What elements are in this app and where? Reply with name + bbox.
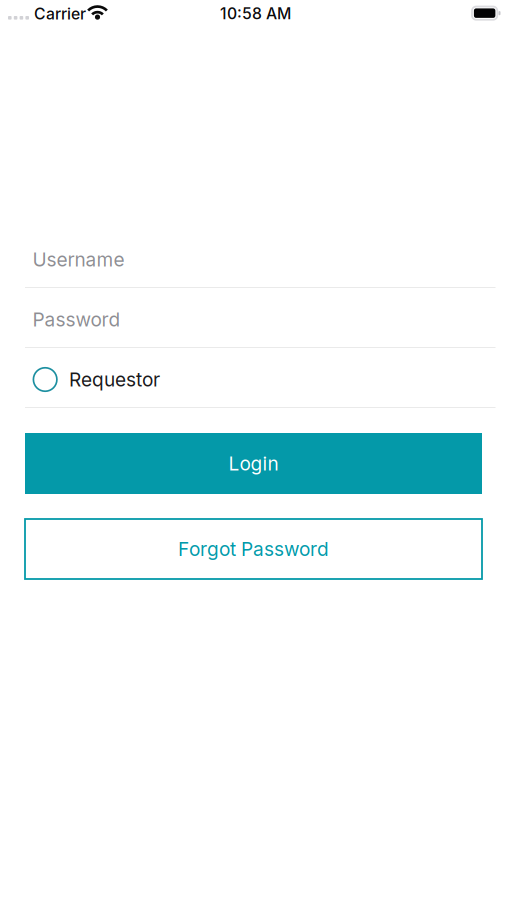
staticText: Login — [228, 452, 278, 475]
button[interactable]: Login — [25, 433, 482, 494]
button[interactable]: Forgot Password — [25, 519, 482, 579]
staticText: Forgot Password — [178, 537, 329, 561]
button[interactable]: Password — [25, 288, 495, 348]
staticText: 10:58 AM — [220, 4, 291, 23]
staticText: Carrier — [34, 4, 86, 23]
staticText: Password — [33, 308, 121, 331]
button[interactable]: Requestor — [25, 348, 495, 408]
staticText: Username — [33, 248, 125, 271]
staticText: Requestor — [69, 368, 160, 391]
button[interactable]: Username — [25, 228, 495, 288]
